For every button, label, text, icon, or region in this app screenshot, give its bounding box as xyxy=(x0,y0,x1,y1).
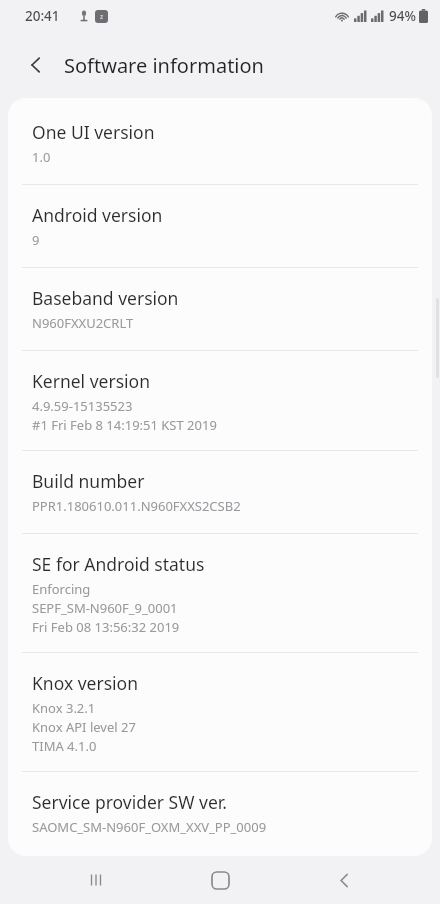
staticText: Knox 3.2.1 xyxy=(32,699,96,717)
staticText: Knox version xyxy=(32,671,138,695)
staticText: Software information xyxy=(64,52,264,79)
staticText: Kernel version xyxy=(32,369,150,393)
staticText: Fri Feb 08 13:56:32 2019 xyxy=(32,618,180,636)
button[interactable]: Android version xyxy=(8,185,432,268)
button[interactable]: Service provider SW ver. xyxy=(8,772,432,856)
staticText: Build number xyxy=(32,469,145,493)
button[interactable]: Knox version xyxy=(8,653,432,772)
button[interactable]: Home xyxy=(198,858,242,902)
staticText: SAOMC_SM-N960F_OXM_XXV_PP_0009 xyxy=(32,818,267,836)
staticText: 1.0 xyxy=(32,148,51,166)
button[interactable]: Recent apps xyxy=(74,858,118,902)
button[interactable]: SE for Android status xyxy=(8,534,432,653)
staticText: 4.9.59-15135523 xyxy=(32,397,133,415)
staticText: One UI version xyxy=(32,120,155,144)
staticText: N960FXXU2CRLT xyxy=(32,314,134,332)
button[interactable]: Back xyxy=(322,858,366,902)
staticText: SE for Android status xyxy=(32,552,205,576)
staticText: Baseband version xyxy=(32,286,179,310)
button[interactable]: Back xyxy=(14,43,58,87)
button[interactable]: Kernel version xyxy=(8,351,432,451)
staticText: TIMA 4.1.0 xyxy=(32,737,97,755)
button[interactable]: Baseband version xyxy=(8,268,432,351)
staticText: SEPF_SM-N960F_9_0001 xyxy=(32,599,178,617)
staticText: Knox API level 27 xyxy=(32,718,136,736)
staticText: Service provider SW ver. xyxy=(32,790,227,814)
staticText: Enforcing xyxy=(32,580,91,598)
staticText: 20:41 xyxy=(25,7,60,25)
staticText: #1 Fri Feb 8 14:19:51 KST 2019 xyxy=(32,416,217,434)
staticText: PPR1.180610.011.N960FXXS2CSB2 xyxy=(32,497,241,515)
staticText: 94% xyxy=(389,7,416,25)
button[interactable]: Build number xyxy=(8,451,432,534)
button[interactable]: One UI version xyxy=(8,98,432,185)
staticText: Android version xyxy=(32,203,163,227)
staticText: z xyxy=(100,12,104,22)
staticText: 9 xyxy=(32,231,40,249)
